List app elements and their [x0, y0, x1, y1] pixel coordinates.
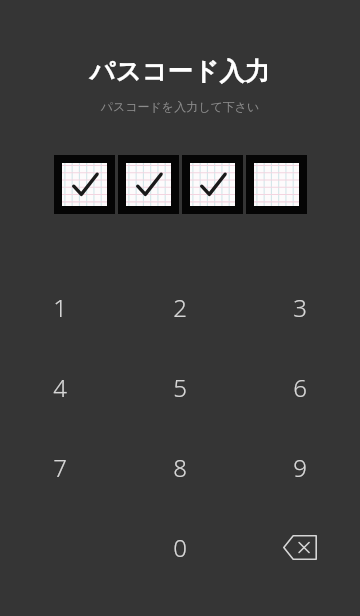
button[interactable]: 0 — [120, 507, 240, 587]
staticText: 1 — [53, 291, 67, 324]
staticText: 7 — [53, 451, 67, 484]
button[interactable]: 9 — [240, 427, 360, 507]
button[interactable]: 1 — [0, 267, 120, 347]
button[interactable]: 7 — [0, 427, 120, 507]
button[interactable]: 6 — [240, 347, 360, 427]
staticText: 0 — [173, 531, 187, 564]
staticText: パスコードを入力して下さい — [0, 99, 360, 114]
staticText: 6 — [293, 371, 307, 404]
button[interactable]: 2 — [120, 267, 240, 347]
button[interactable]: 8 — [120, 427, 240, 507]
staticText: 3 — [293, 291, 307, 324]
button[interactable]: Backspace — [240, 507, 360, 587]
button[interactable]: 4 — [0, 347, 120, 427]
staticText: 8 — [173, 451, 187, 484]
staticText: 9 — [293, 451, 307, 484]
staticText: 2 — [173, 291, 187, 324]
button[interactable]: 3 — [240, 267, 360, 347]
button[interactable]: 5 — [120, 347, 240, 427]
staticText: 4 — [53, 371, 67, 404]
staticText: 5 — [173, 371, 187, 404]
staticText: パスコード入力 — [0, 56, 360, 87]
